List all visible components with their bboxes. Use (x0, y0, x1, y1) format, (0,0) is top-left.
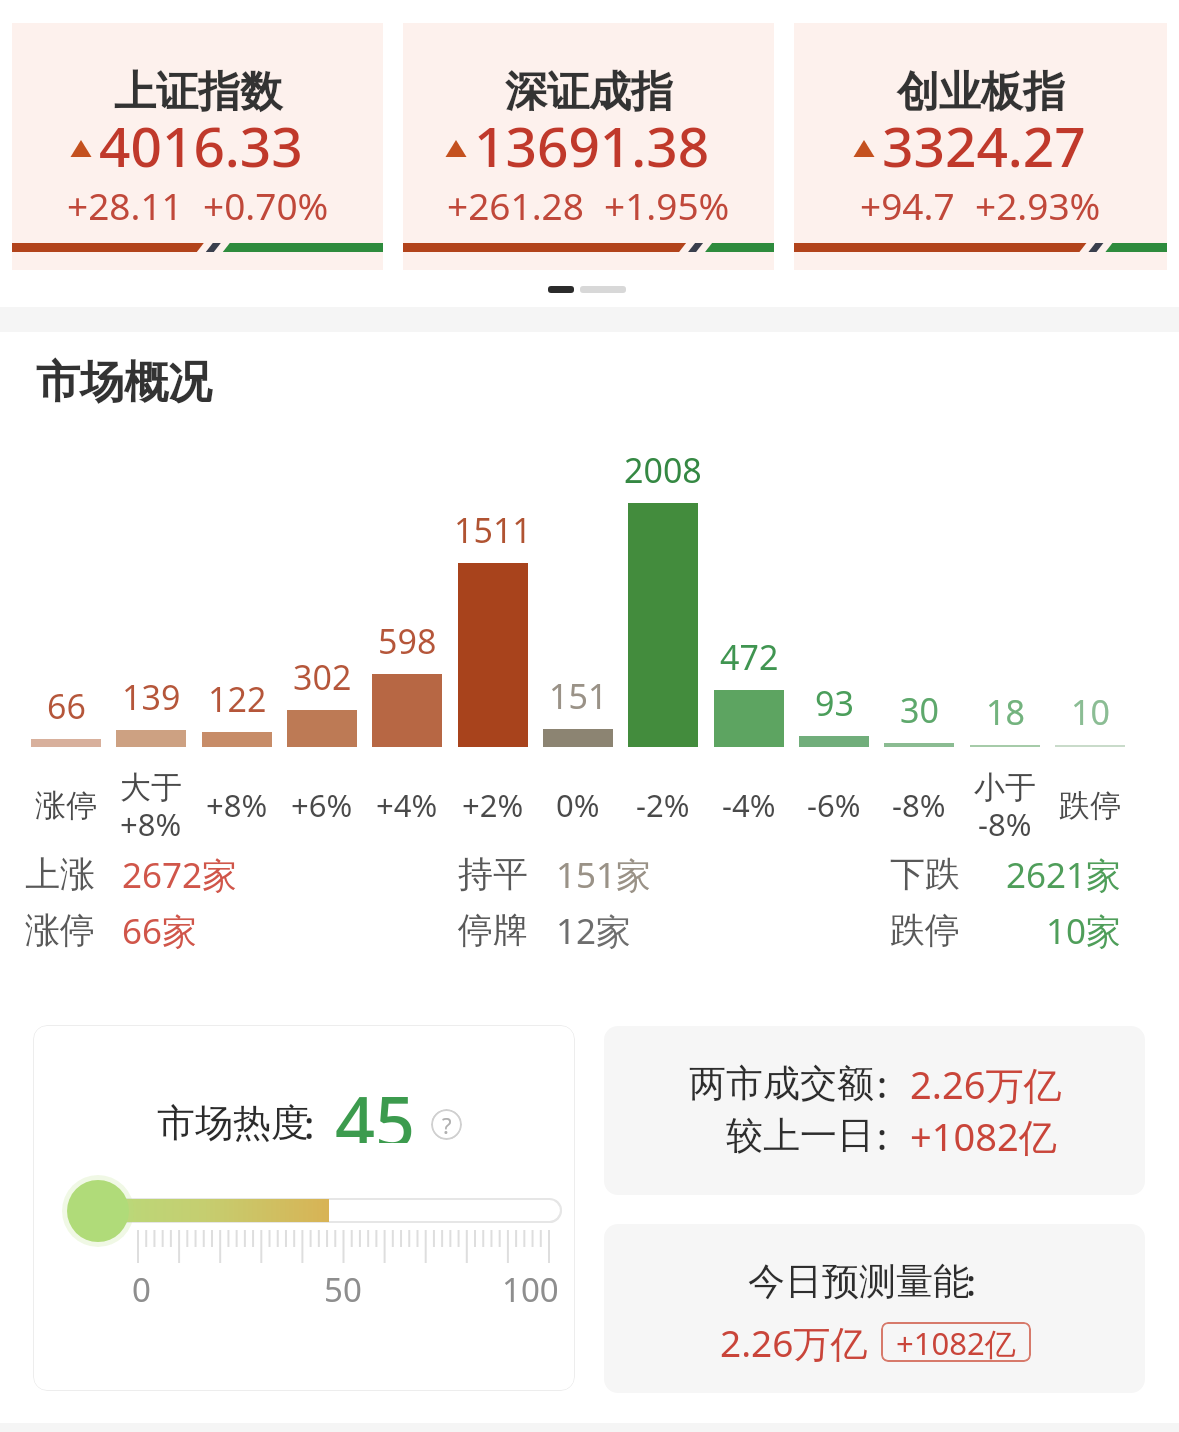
staticText: 10 (1071, 689, 1110, 733)
staticText: 4016.33 (99, 108, 303, 183)
staticText: +94.7 (860, 180, 955, 230)
staticText: 持平 (458, 852, 528, 896)
button[interactable]: 今日预测量能 (604, 1224, 1145, 1393)
staticText: 93 (815, 680, 854, 724)
staticText: -6% (807, 784, 861, 826)
staticText: -8% (978, 803, 1032, 843)
staticText: 472 (720, 634, 779, 678)
staticText: +1.95% (604, 180, 730, 230)
staticText: 122 (208, 676, 267, 720)
staticText: 0% (556, 784, 600, 826)
staticText: +6% (291, 784, 353, 826)
staticText: 2008 (624, 447, 702, 491)
staticText: 151家 (556, 851, 652, 896)
staticText: +4% (376, 784, 438, 826)
staticText: ? (442, 1110, 452, 1140)
staticText: 151 (549, 673, 608, 717)
staticText: 3324.27 (882, 108, 1086, 183)
staticText: 30 (900, 687, 939, 731)
staticText: 0 (132, 1267, 151, 1312)
staticText: 2.26万亿 (910, 1058, 1062, 1108)
staticText: 66 (47, 683, 86, 727)
staticText: : (877, 1110, 888, 1160)
staticText: 下跌 (890, 852, 960, 896)
button[interactable]: 市场热度 (33, 1025, 575, 1391)
staticText: +261.28 (447, 180, 584, 230)
staticText: 涨停 (25, 908, 95, 952)
staticText: 市场概况 (36, 355, 212, 410)
staticText: 跌停 (890, 908, 960, 952)
staticText: 2.26万亿 (720, 1317, 868, 1368)
staticText: 50 (324, 1267, 362, 1312)
staticText: 较上一日 (726, 1112, 874, 1159)
staticText: +0.70% (203, 180, 329, 230)
staticText: 45 (335, 1073, 416, 1143)
button[interactable]: 深证成指 (403, 23, 774, 270)
staticText: -4% (722, 784, 776, 826)
staticText: -8% (892, 784, 946, 826)
staticText: : (304, 1098, 315, 1148)
staticText: +1082亿 (896, 1322, 1016, 1362)
staticText: 12家 (556, 907, 632, 952)
button[interactable]: 上证指数 (12, 23, 383, 270)
staticText: 上证指数 (114, 66, 282, 119)
staticText: 上涨 (25, 852, 95, 896)
button[interactable]: 帮助 (431, 1109, 462, 1140)
staticText: 两市成交额 (689, 1060, 874, 1107)
staticText: +2% (462, 784, 524, 826)
staticText: +8% (206, 784, 268, 826)
staticText: 18 (986, 689, 1025, 733)
staticText: 大于 (120, 768, 182, 807)
staticText: +2.93% (975, 180, 1101, 230)
staticText: 停牌 (458, 908, 528, 952)
staticText: 市场热度 (157, 1099, 309, 1147)
staticText: 1511 (454, 507, 532, 551)
staticText: 涨停 (35, 786, 97, 825)
button[interactable]: 两市成交额 (604, 1026, 1145, 1195)
staticText: 66家 (122, 907, 198, 952)
staticText: 深证成指 (505, 66, 673, 119)
staticText: +1082亿 (910, 1110, 1057, 1160)
staticText: 139 (122, 674, 181, 718)
staticText: +8% (120, 803, 182, 843)
staticText: : (877, 1058, 888, 1108)
staticText: 小于 (974, 768, 1036, 807)
staticText: 2672家 (122, 851, 238, 896)
staticText: : (966, 1256, 977, 1306)
staticText: 302 (293, 654, 352, 698)
button[interactable]: 创业板指 (794, 23, 1167, 270)
staticText: 今日预测量能 (748, 1258, 968, 1305)
staticText: 跌停 (1059, 786, 1121, 825)
staticText: 598 (378, 618, 437, 662)
staticText: 10家 (1046, 907, 1122, 952)
staticText: 创业板指 (897, 66, 1065, 119)
staticText: -2% (636, 784, 690, 826)
staticText: 100 (502, 1267, 559, 1312)
staticText: +28.11 (67, 180, 183, 230)
staticText: 2621家 (1006, 851, 1122, 896)
staticText: 13691.38 (474, 108, 710, 183)
